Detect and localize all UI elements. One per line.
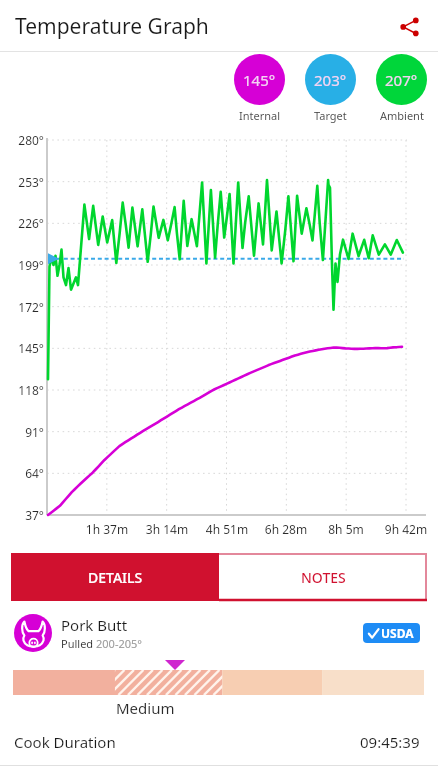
- staticText: Cook Duration: [14, 732, 116, 752]
- staticText: 253°: [16, 174, 44, 190]
- staticText: 8h 5m: [319, 521, 373, 537]
- staticText: DETAILS: [88, 568, 143, 587]
- staticText: USDA: [381, 625, 414, 641]
- staticText: Ambient: [380, 108, 424, 123]
- staticText: 172°: [16, 299, 44, 315]
- staticText: Temperature Graph: [15, 12, 209, 41]
- staticText: 118°: [16, 382, 44, 398]
- button[interactable]: 203°: [305, 54, 356, 105]
- button[interactable]: DETAILS: [11, 553, 219, 601]
- staticText: 200-205°: [96, 636, 143, 651]
- staticText: 6h 28m: [259, 521, 313, 537]
- staticText: 145°: [16, 340, 44, 356]
- button[interactable]: 207°: [376, 54, 427, 105]
- staticText: 64°: [16, 465, 44, 481]
- staticText: NOTES: [301, 568, 346, 587]
- staticText: 9h 42m: [379, 521, 433, 537]
- staticText: Internal: [239, 108, 281, 123]
- staticText: 3h 14m: [140, 521, 194, 537]
- staticText: 37°: [16, 507, 44, 523]
- staticText: 226°: [16, 215, 44, 231]
- staticText: Pork Butt: [61, 615, 128, 635]
- staticText: Target: [314, 108, 347, 123]
- staticText: 1h 37m: [80, 521, 134, 537]
- button[interactable]: Share: [389, 6, 429, 46]
- staticText: 203°: [314, 70, 347, 90]
- staticText: 207°: [385, 70, 418, 90]
- staticText: Medium: [116, 698, 175, 718]
- staticText: 280°: [16, 132, 44, 148]
- button[interactable]: NOTES: [219, 553, 427, 601]
- staticText: Pulled: [61, 636, 96, 651]
- button[interactable]: 145°: [234, 54, 285, 105]
- staticText: 09:45:39: [360, 732, 420, 752]
- staticText: 91°: [16, 424, 44, 440]
- staticText: 4h 51m: [200, 521, 254, 537]
- staticText: 199°: [16, 257, 44, 273]
- staticText: 145°: [243, 70, 276, 90]
- button[interactable]: USDA: [368, 625, 414, 641]
